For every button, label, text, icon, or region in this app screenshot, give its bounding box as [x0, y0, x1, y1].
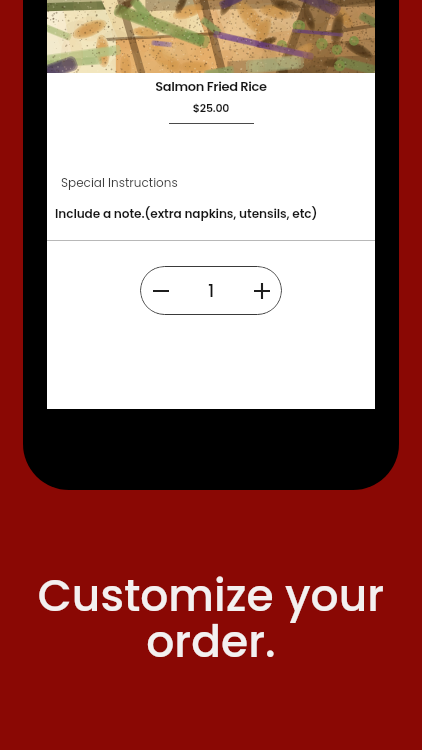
staticText: 1: [208, 278, 215, 303]
staticText: $25.00: [47, 100, 375, 115]
staticText: Salmon Fried Rice: [47, 77, 375, 95]
button[interactable]: Decrease quantity: [145, 275, 177, 307]
button[interactable]: Increase quantity: [246, 275, 278, 307]
staticText: Customize your order.: [0, 565, 422, 672]
staticText: Special Instructions: [61, 174, 178, 191]
staticText: Include a note.(extra napkins, utensils,…: [55, 205, 318, 222]
button[interactable]: Decrease quantity: [140, 266, 282, 315]
